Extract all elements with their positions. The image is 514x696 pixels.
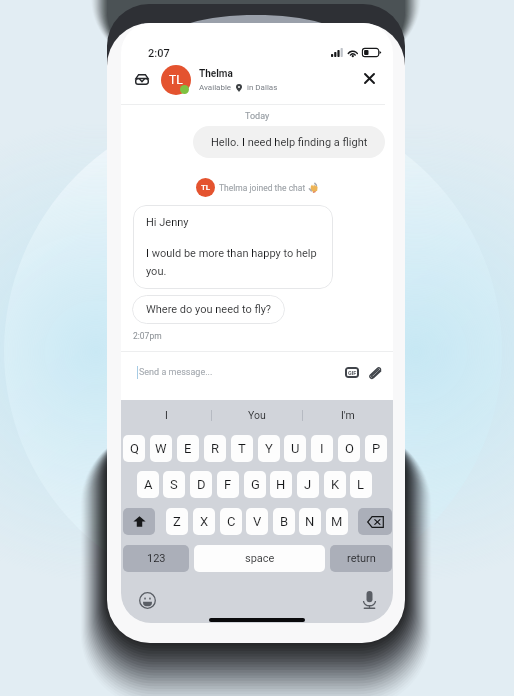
staticText: Q xyxy=(130,441,139,456)
button[interactable]: B xyxy=(273,508,295,535)
staticText: H xyxy=(276,477,286,492)
button[interactable]: Send a GIF xyxy=(338,361,365,384)
button[interactable]: I xyxy=(121,404,211,426)
staticText: GIF xyxy=(348,370,357,376)
staticText: 123 xyxy=(147,552,166,565)
button[interactable]: V xyxy=(246,508,268,535)
button[interactable]: F xyxy=(217,471,239,498)
staticText: return xyxy=(347,552,376,565)
button[interactable]: A xyxy=(137,471,159,498)
staticText: I xyxy=(165,409,168,421)
staticText: V xyxy=(253,514,262,529)
button[interactable]: E xyxy=(177,435,199,462)
staticText: I xyxy=(320,441,324,456)
staticText: E xyxy=(184,441,192,456)
staticText: Thelma joined the chat xyxy=(219,183,306,193)
button[interactable]: Inbox xyxy=(128,67,156,92)
button[interactable]: D xyxy=(190,471,212,498)
button[interactable]: R xyxy=(204,435,226,462)
staticText: I would be more than happy to help you. xyxy=(146,247,327,278)
button[interactable]: Backspace xyxy=(358,508,392,535)
button[interactable]: C xyxy=(220,508,242,535)
button[interactable]: You xyxy=(212,404,302,426)
button[interactable]: 123 xyxy=(123,545,189,572)
button[interactable]: J xyxy=(297,471,319,498)
staticText: Where do you need to fly? xyxy=(146,303,272,316)
staticText: Today xyxy=(245,111,270,122)
staticText: W xyxy=(155,441,167,456)
staticText: A xyxy=(144,477,153,492)
staticText: space xyxy=(245,552,275,565)
button[interactable]: O xyxy=(338,435,360,462)
button[interactable]: M xyxy=(326,508,348,535)
button[interactable]: N xyxy=(299,508,321,535)
staticText: L xyxy=(357,477,365,492)
staticText: Hello. I need help finding a flight xyxy=(211,136,368,149)
staticText: Y xyxy=(265,441,273,456)
button[interactable]: Q xyxy=(123,435,145,462)
staticText: X xyxy=(200,514,209,529)
button[interactable]: Emoji xyxy=(133,586,161,614)
staticText: J xyxy=(304,477,312,492)
staticText: N xyxy=(305,514,315,529)
staticText: U xyxy=(291,441,300,456)
staticText: TL xyxy=(169,73,183,87)
staticText: 2:07pm xyxy=(133,331,162,341)
button[interactable]: X xyxy=(193,508,215,535)
staticText: Available xyxy=(199,83,232,92)
staticText: C xyxy=(227,514,236,529)
staticText: P xyxy=(372,441,381,456)
staticText: Z xyxy=(173,514,181,529)
button[interactable]: H xyxy=(270,471,292,498)
button[interactable]: space xyxy=(194,545,325,572)
button[interactable]: W xyxy=(150,435,172,462)
button[interactable]: return xyxy=(330,545,392,572)
staticText: K xyxy=(331,477,340,492)
staticText: O xyxy=(345,441,354,456)
staticText: S xyxy=(170,477,178,492)
button[interactable]: Attach file xyxy=(362,361,388,384)
staticText: You xyxy=(248,409,266,421)
button[interactable]: Shift xyxy=(123,508,155,535)
staticText: TL xyxy=(201,183,211,192)
button[interactable]: L xyxy=(350,471,372,498)
button[interactable]: K xyxy=(324,471,346,498)
button[interactable]: S xyxy=(163,471,185,498)
staticText: M xyxy=(331,514,343,529)
button[interactable]: I xyxy=(311,435,333,462)
staticText: Thelma xyxy=(199,68,233,80)
staticText: B xyxy=(280,514,289,529)
staticText: G xyxy=(251,477,260,492)
staticText: Hi Jenny xyxy=(146,216,189,229)
button[interactable]: P xyxy=(365,435,387,462)
staticText: D xyxy=(197,477,206,492)
button[interactable]: Y xyxy=(258,435,280,462)
staticText: R xyxy=(211,441,220,456)
button[interactable]: I'm xyxy=(303,404,393,426)
staticText: T xyxy=(238,441,246,456)
staticText: F xyxy=(224,477,232,492)
staticText: I'm xyxy=(341,409,355,421)
staticText: in Dallas xyxy=(247,83,278,92)
button[interactable]: U xyxy=(284,435,306,462)
staticText: Send a message... xyxy=(139,367,213,378)
button[interactable]: G xyxy=(244,471,266,498)
button[interactable]: Close xyxy=(355,64,383,92)
button[interactable]: Dictate xyxy=(355,586,383,614)
staticText: 2:07 xyxy=(148,47,170,60)
button[interactable]: T xyxy=(231,435,253,462)
button[interactable]: Z xyxy=(166,508,188,535)
